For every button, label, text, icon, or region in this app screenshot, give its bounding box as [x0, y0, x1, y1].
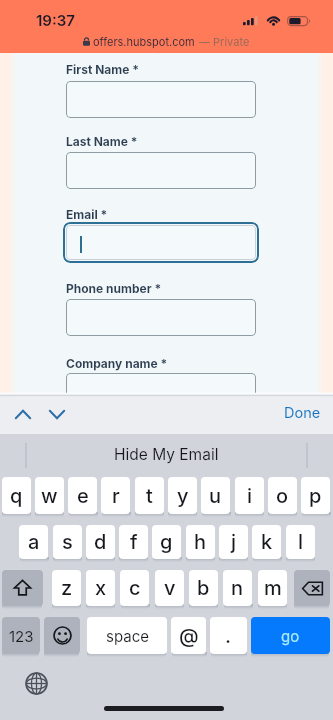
staticText: d: [94, 530, 107, 554]
staticText: e: [77, 484, 89, 508]
button[interactable]: g: [152, 525, 181, 559]
button[interactable]: k: [252, 525, 281, 559]
button[interactable]: @: [171, 617, 206, 654]
staticText: @: [179, 624, 199, 648]
staticText: r: [112, 484, 120, 508]
button[interactable]: Shift: [2, 570, 43, 606]
button[interactable]: Done: [276, 397, 328, 429]
button[interactable]: f: [119, 525, 148, 559]
staticText: v: [164, 576, 176, 600]
button[interactable]: x: [86, 570, 115, 606]
button[interactable]: space: [87, 617, 167, 654]
button[interactable]: [66, 152, 256, 189]
staticText: y: [177, 484, 189, 508]
button[interactable]: p: [301, 477, 330, 514]
staticText: Email *: [66, 207, 108, 222]
staticText: m: [264, 576, 282, 600]
button[interactable]: o: [268, 477, 297, 514]
button[interactable]: j: [219, 525, 248, 559]
button[interactable]: w: [35, 477, 64, 514]
staticText: o: [276, 484, 289, 508]
button[interactable]: [66, 81, 256, 118]
staticText: u: [209, 484, 222, 508]
staticText: — Private: [199, 35, 250, 48]
staticText: t: [146, 484, 153, 508]
button[interactable]: [66, 373, 256, 410]
staticText: h: [194, 530, 207, 554]
button[interactable]: v: [155, 570, 184, 606]
staticText: go: [281, 627, 300, 645]
staticText: First Name *: [66, 62, 139, 77]
button[interactable]: d: [86, 525, 115, 559]
button[interactable]: Next field: [41, 399, 73, 429]
staticText: w: [41, 484, 58, 508]
staticText: f: [130, 530, 138, 554]
button[interactable]: u: [201, 477, 230, 514]
staticText: a: [28, 530, 40, 554]
button[interactable]: l: [286, 525, 315, 559]
staticText: Company name *: [66, 356, 168, 371]
staticText: Phone number *: [66, 281, 162, 296]
staticText: g: [160, 530, 173, 554]
button[interactable]: [66, 225, 256, 260]
button[interactable]: Emoji: [44, 617, 80, 654]
staticText: .: [225, 624, 232, 648]
button[interactable]: b: [189, 570, 218, 606]
button[interactable]: r: [101, 477, 130, 514]
button[interactable]: t: [135, 477, 164, 514]
staticText: q: [10, 484, 23, 508]
button[interactable]: z: [52, 570, 81, 606]
button[interactable]: n: [223, 570, 252, 606]
staticText: Done: [284, 404, 321, 422]
button[interactable]: h: [186, 525, 215, 559]
staticText: z: [61, 576, 73, 600]
staticText: i: [247, 484, 253, 508]
button[interactable]: a: [19, 525, 48, 559]
button[interactable]: [66, 299, 256, 336]
staticText: 19:37: [36, 11, 75, 29]
button[interactable]: go: [251, 617, 330, 654]
button[interactable]: c: [120, 570, 149, 606]
button[interactable]: Backspace: [294, 570, 330, 606]
button[interactable]: y: [168, 477, 197, 514]
button[interactable]: Switch keyboard: [24, 671, 49, 696]
staticText: Hide My Email: [114, 445, 219, 464]
staticText: space: [106, 627, 149, 645]
staticText: j: [231, 530, 237, 554]
button[interactable]: i: [235, 477, 264, 514]
button[interactable]: 123: [2, 617, 40, 654]
button[interactable]: .: [210, 617, 247, 654]
staticText: p: [309, 484, 322, 508]
staticText: c: [129, 576, 141, 600]
staticText: b: [197, 576, 210, 600]
staticText: k: [261, 530, 273, 554]
staticText: offers.hubspot.com: [93, 35, 195, 48]
staticText: l: [298, 530, 304, 554]
button[interactable]: s: [53, 525, 82, 559]
staticText: Last Name *: [66, 134, 138, 149]
button[interactable]: e: [68, 477, 97, 514]
button[interactable]: Hide My Email: [0, 434, 333, 474]
button[interactable]: q: [2, 477, 31, 514]
button[interactable]: Previous field: [7, 399, 39, 429]
staticText: s: [62, 530, 73, 554]
staticText: x: [95, 576, 107, 600]
staticText: 123: [9, 627, 34, 645]
staticText: n: [231, 576, 244, 600]
button[interactable]: m: [258, 570, 287, 606]
